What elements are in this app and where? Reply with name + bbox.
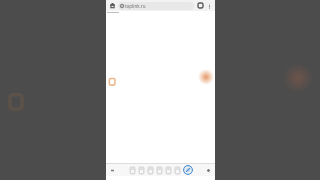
button[interactable]: Tab 6: [174, 166, 181, 175]
button[interactable]: Tab 2: [138, 166, 145, 175]
button[interactable]: Previous: [108, 166, 117, 175]
button[interactable]: Tab 5: [165, 166, 172, 175]
button[interactable]: More options: [205, 2, 213, 10]
button[interactable]: Tab 1: [129, 166, 136, 175]
button[interactable]: New tab: [204, 166, 213, 175]
button[interactable]: Current tab: [183, 165, 193, 175]
button[interactable]: Tab 4: [156, 166, 163, 175]
button[interactable]: toplink.ru: [118, 2, 194, 10]
button[interactable]: Tabs: [196, 1, 205, 10]
button[interactable]: Home: [108, 1, 117, 10]
staticText: toplink.ru: [125, 3, 146, 9]
button[interactable]: Tab 3: [147, 166, 154, 175]
